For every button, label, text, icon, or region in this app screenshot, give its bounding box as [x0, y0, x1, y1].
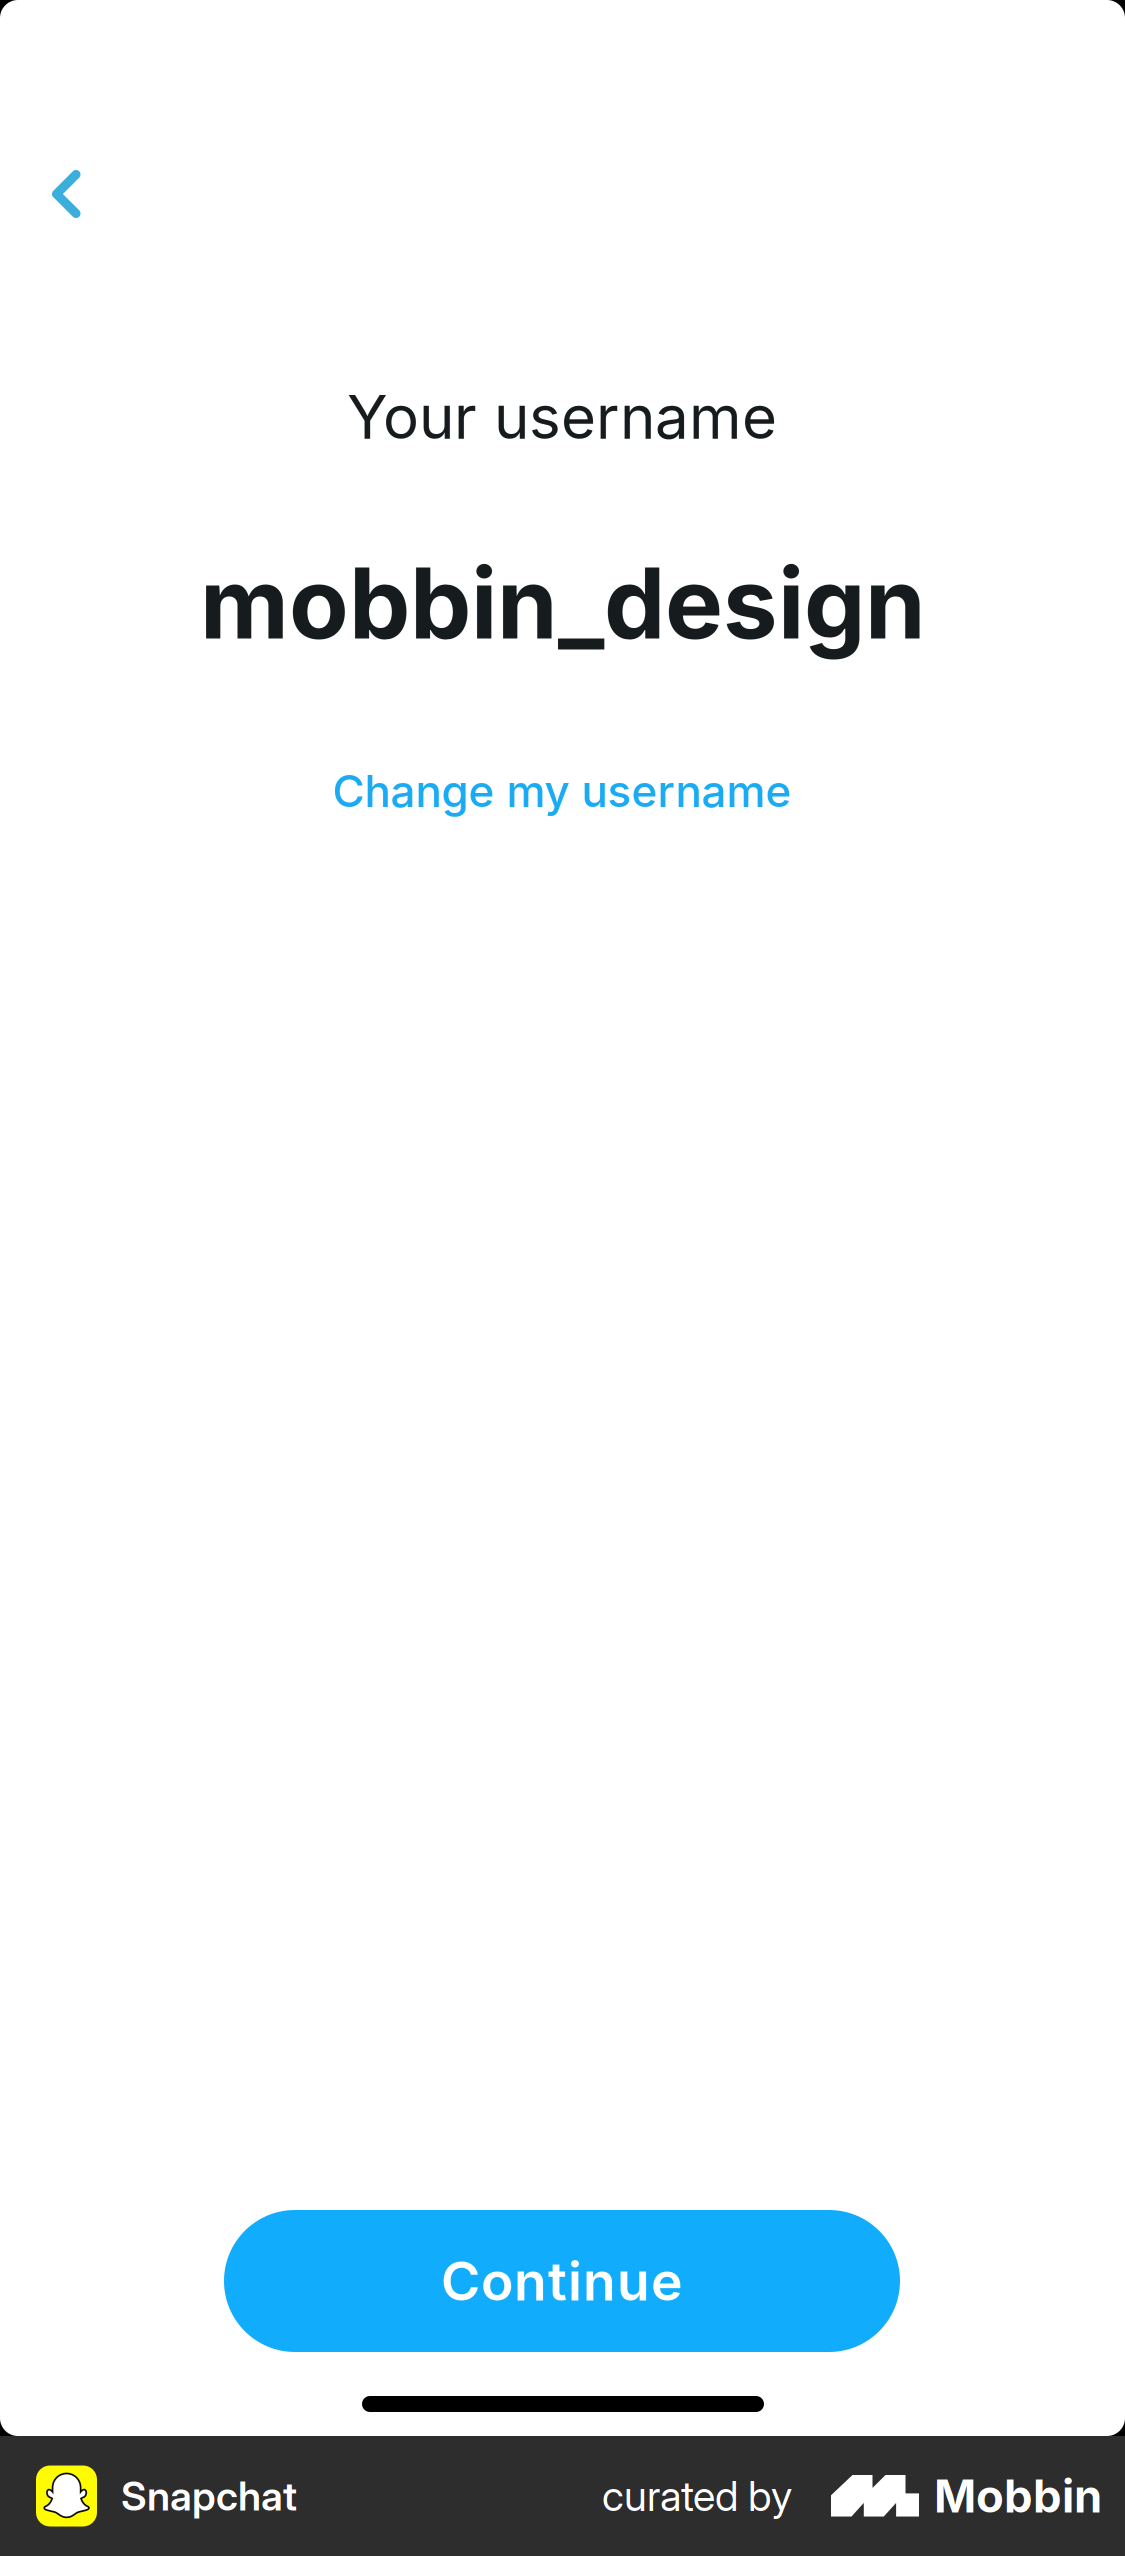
- button[interactable]: Continue: [224, 2210, 900, 2352]
- button[interactable]: Change my username: [312, 750, 811, 832]
- staticText: Change my username: [332, 764, 791, 818]
- staticText: Snapchat: [121, 2472, 297, 2520]
- button[interactable]: Back: [14, 142, 118, 246]
- staticText: mobbin_design: [200, 544, 926, 662]
- staticText: curated by: [602, 2471, 792, 2521]
- staticText: Your username: [347, 381, 777, 453]
- staticText: Continue: [441, 2249, 683, 2313]
- staticText: Mobbin: [934, 2469, 1102, 2523]
